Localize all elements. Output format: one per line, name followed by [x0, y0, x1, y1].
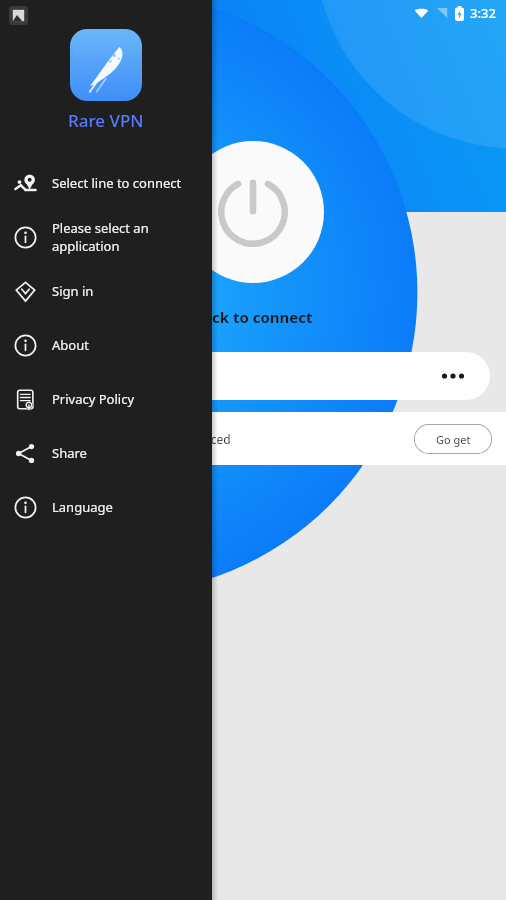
staticText: Please select an application: [52, 219, 204, 255]
button[interactable]: Go get: [414, 424, 492, 454]
staticText: Select line to connect: [52, 174, 182, 192]
button[interactable]: Share: [0, 426, 212, 480]
staticText: Go get: [436, 432, 471, 447]
button[interactable]: Sign in: [0, 264, 212, 318]
staticText: Share: [52, 444, 87, 462]
staticText: About: [52, 336, 89, 354]
staticText: Get more coins, exchange for advanced: [8, 431, 231, 447]
button[interactable]: Connect: [182, 141, 324, 283]
button[interactable]: About: [0, 318, 212, 372]
button[interactable]: Rare VPN logo: [70, 29, 142, 101]
staticText: Sign in: [52, 282, 94, 300]
button[interactable]: Privacy Policy: [0, 372, 212, 426]
staticText: Click to connect: [193, 307, 313, 327]
button[interactable]: Select line to connect: [0, 156, 212, 210]
button[interactable]: Get more coins, exchange for advanced: [0, 412, 506, 465]
button[interactable]: Please select an application: [0, 210, 212, 264]
button[interactable]: More options: [16, 352, 490, 400]
button[interactable]: Language: [0, 480, 212, 534]
button[interactable]: More options: [436, 359, 470, 393]
staticText: Privacy Policy: [52, 390, 135, 408]
staticText: Rare VPN: [68, 109, 144, 132]
staticText: Language: [52, 498, 113, 516]
staticText: 3:32: [470, 4, 496, 22]
